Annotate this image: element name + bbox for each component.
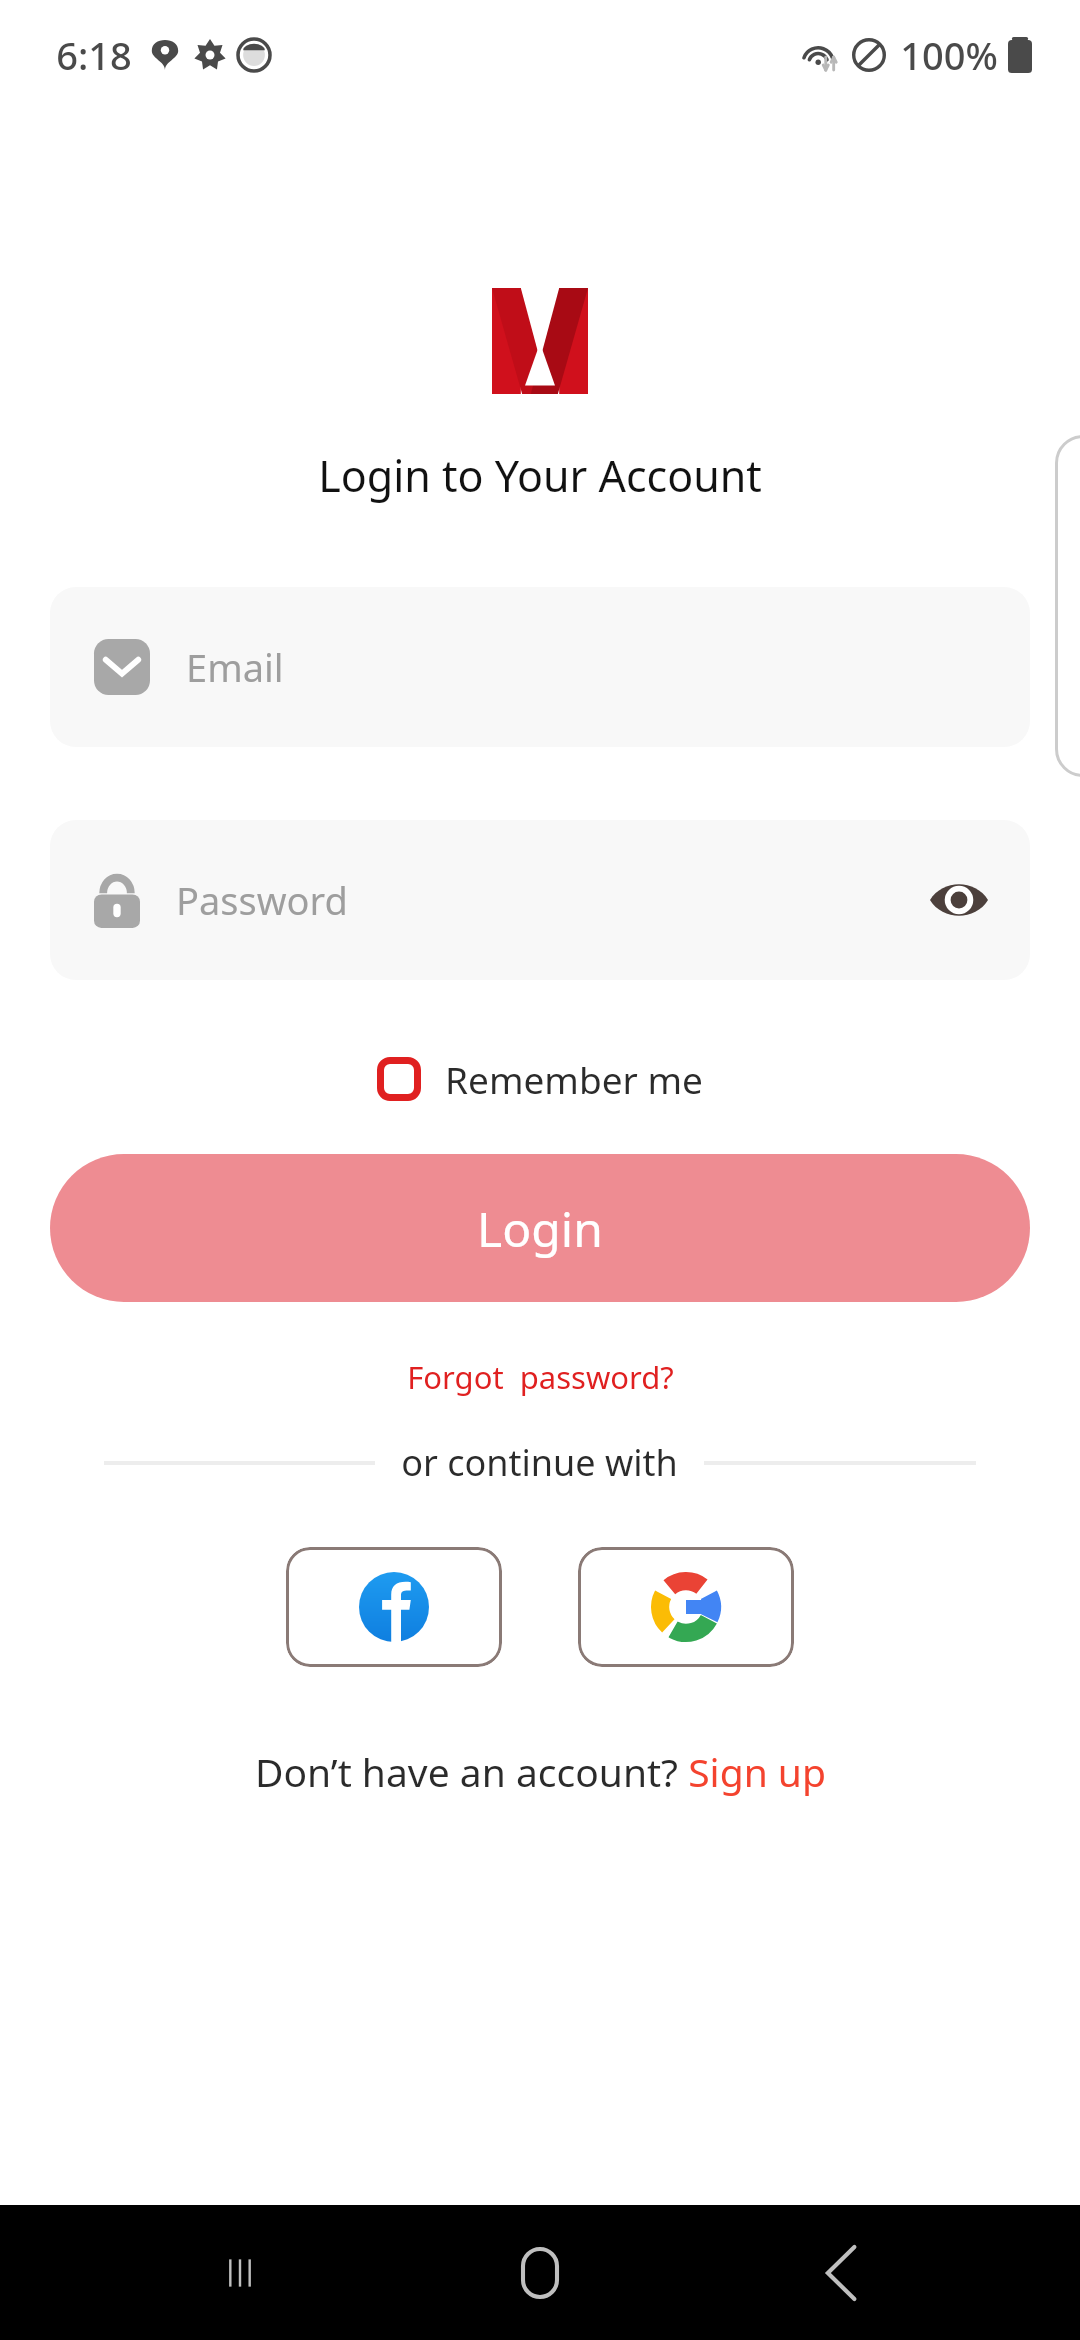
staticText: Password bbox=[176, 874, 348, 926]
button[interactable]: Home bbox=[480, 2213, 600, 2333]
button[interactable]: Don’t have an account? Sign up bbox=[239, 1739, 842, 1804]
staticText: Login to Your Account bbox=[318, 446, 762, 505]
staticText: 100% bbox=[900, 29, 998, 81]
button[interactable]: Sign in with Google bbox=[578, 1547, 794, 1667]
button[interactable]: Show password bbox=[918, 867, 1000, 933]
button[interactable]: Sign in with Facebook bbox=[286, 1547, 502, 1667]
button[interactable]: Remember me bbox=[365, 1046, 715, 1112]
button[interactable]: Forgot password? bbox=[393, 1352, 688, 1402]
button[interactable]: Login bbox=[50, 1154, 1030, 1302]
staticText: Remember me bbox=[445, 1054, 703, 1104]
button[interactable]: Email bbox=[50, 587, 1030, 747]
staticText: Email bbox=[186, 641, 284, 693]
button[interactable]: Back bbox=[780, 2213, 900, 2333]
staticText: or continue with bbox=[401, 1438, 678, 1487]
button[interactable]: Recent apps bbox=[180, 2213, 300, 2333]
button[interactable]: Password bbox=[50, 820, 1030, 980]
staticText: Forgot password? bbox=[407, 1356, 674, 1398]
staticText: Don’t have an account? Sign up bbox=[255, 1745, 826, 1798]
staticText: 6:18 bbox=[56, 29, 132, 81]
staticText: Login bbox=[477, 1196, 603, 1261]
